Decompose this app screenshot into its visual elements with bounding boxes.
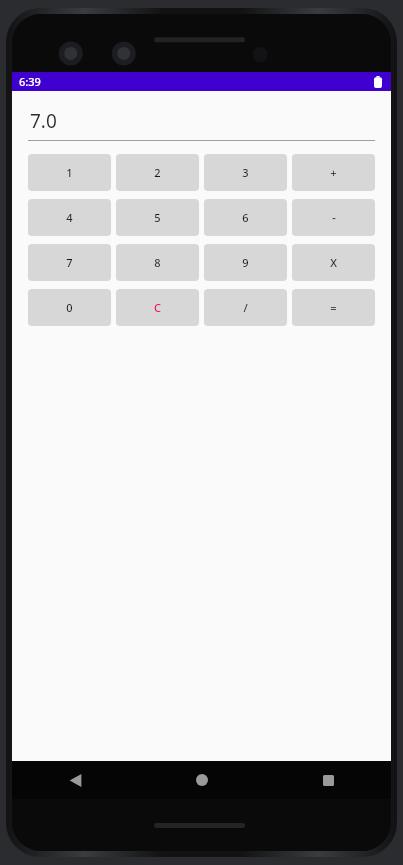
button[interactable]: X (292, 244, 375, 281)
button[interactable]: = (292, 289, 375, 326)
button[interactable]: 3 (204, 154, 287, 191)
staticText: 8 (154, 255, 161, 270)
staticText: 4 (66, 210, 73, 225)
button[interactable]: - (292, 199, 375, 236)
button[interactable]: 9 (204, 244, 287, 281)
staticText: 1 (66, 165, 73, 180)
button[interactable]: Recent apps (311, 763, 345, 797)
staticText: 2 (154, 165, 161, 180)
button[interactable]: 1 (28, 154, 111, 191)
button[interactable]: Back (58, 763, 92, 797)
staticText: 3 (242, 165, 249, 180)
staticText: - (332, 210, 336, 225)
staticText: C (154, 300, 161, 315)
staticText: = (330, 300, 337, 315)
button[interactable]: C (116, 289, 199, 326)
button[interactable]: 7 (28, 244, 111, 281)
staticText: 7.0 (30, 108, 57, 134)
button[interactable]: 4 (28, 199, 111, 236)
button[interactable]: 6 (204, 199, 287, 236)
staticText: / (243, 300, 248, 315)
button[interactable]: 2 (116, 154, 199, 191)
staticText: + (330, 165, 337, 180)
button[interactable]: 0 (28, 289, 111, 326)
button[interactable]: / (204, 289, 287, 326)
staticText: 9 (242, 255, 249, 270)
staticText: 6 (242, 210, 249, 225)
staticText: 0 (66, 300, 73, 315)
button[interactable]: 5 (116, 199, 199, 236)
staticText: 7 (66, 255, 73, 270)
button[interactable]: + (292, 154, 375, 191)
staticText: 5 (154, 210, 161, 225)
staticText: X (330, 255, 337, 270)
staticText: 6:39 (19, 74, 41, 89)
button[interactable]: Home (185, 763, 219, 797)
button[interactable]: 8 (116, 244, 199, 281)
